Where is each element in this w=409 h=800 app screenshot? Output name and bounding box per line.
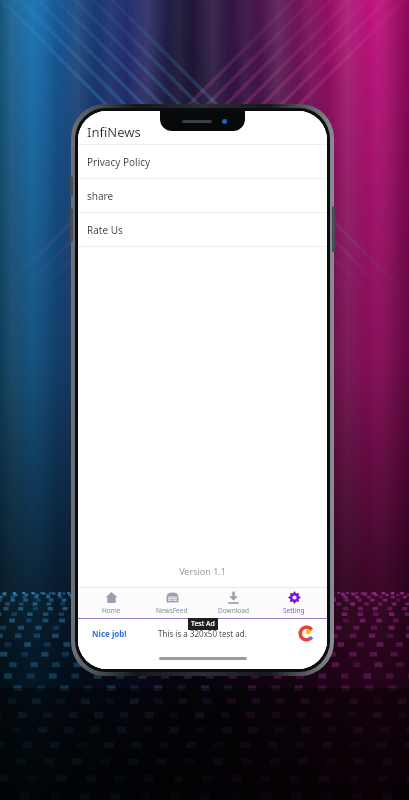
- button[interactable]: Rate Us: [78, 213, 327, 246]
- staticText: This is a 320x50 test ad.: [158, 628, 247, 639]
- staticText: share: [87, 189, 114, 203]
- staticText: Test Ad: [191, 619, 215, 629]
- button[interactable]: Setting: [266, 587, 322, 619]
- staticText: Home: [102, 606, 121, 615]
- button[interactable]: Download: [205, 587, 261, 619]
- button[interactable]: NewsFeed: [144, 587, 200, 619]
- staticText: Rate Us: [87, 223, 123, 237]
- button[interactable]: Nice job!: [78, 619, 327, 647]
- button[interactable]: share: [78, 179, 327, 212]
- staticText: NewsFeed: [156, 606, 188, 615]
- button[interactable]: Privacy Policy: [78, 145, 327, 178]
- button[interactable]: Home: [83, 587, 139, 619]
- staticText: Download: [218, 606, 249, 615]
- staticText: Privacy Policy: [87, 155, 151, 169]
- staticText: Version 1.1: [78, 565, 327, 577]
- staticText: InfiNews: [87, 123, 141, 141]
- staticText: Nice job!: [92, 628, 127, 639]
- staticText: Setting: [283, 606, 305, 615]
